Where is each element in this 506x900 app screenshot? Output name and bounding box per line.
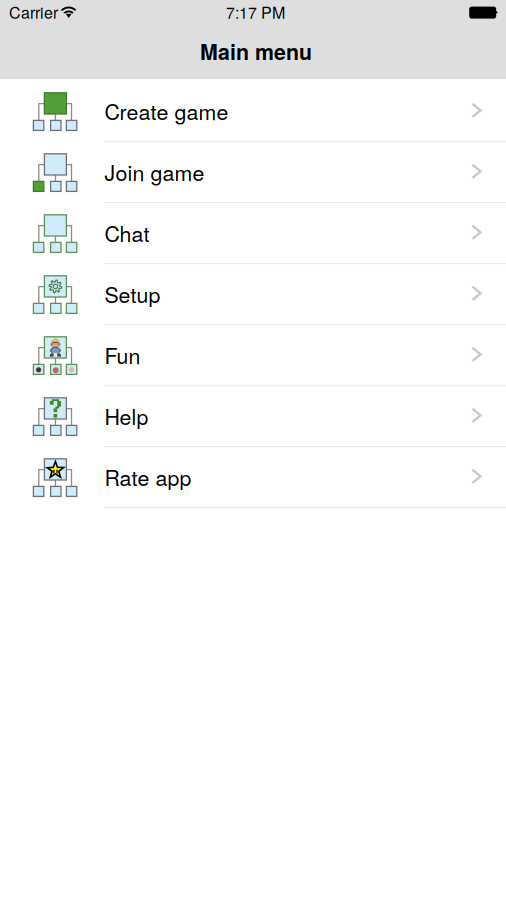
button[interactable]: Create game [0,81,506,142]
staticText: Setup [105,278,161,309]
button[interactable]: Rate app [0,447,506,508]
staticText: Chat [105,217,150,248]
staticText: Carrier [9,0,58,23]
button[interactable]: Fun [0,325,506,386]
button[interactable]: Join game [0,142,506,203]
staticText: Fun [105,339,141,370]
staticText: Create game [105,95,229,126]
staticText: 7:17 PM [226,0,285,23]
button[interactable]: Help [0,386,506,447]
staticText: Main menu [200,36,312,66]
button[interactable]: Setup [0,264,506,325]
staticText: Help [105,400,149,431]
staticText: Rate app [105,461,192,492]
staticText: Join game [105,156,205,187]
button[interactable]: Chat [0,203,506,264]
